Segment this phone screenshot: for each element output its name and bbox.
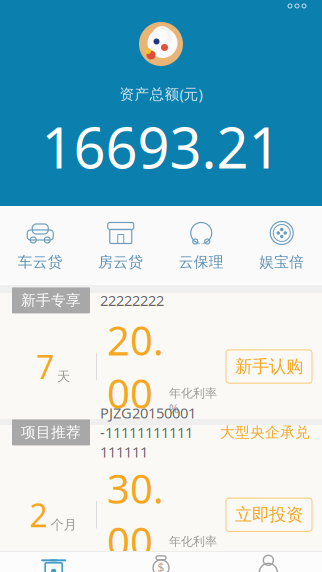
button[interactable]: 车云贷 — [0, 206, 80, 285]
button[interactable]: $ — [107, 550, 215, 572]
staticText: 大型央企承兑 — [220, 423, 310, 441]
staticText: 天 — [57, 368, 70, 385]
staticText: $ — [157, 560, 164, 572]
staticText: 年化利率 — [169, 534, 217, 549]
staticText: 新手专享 — [21, 291, 81, 309]
button[interactable]: 房云贷 — [80, 206, 161, 285]
staticText: % — [169, 401, 179, 417]
button[interactable]: 娱宝倍 — [241, 206, 322, 285]
staticText: 项目推荐 — [21, 423, 81, 441]
button[interactable]: More options — [278, 0, 316, 16]
staticText: 2 — [29, 493, 47, 536]
staticText: 房云贷 — [98, 253, 143, 271]
staticText: 22222222 — [100, 291, 164, 310]
button[interactable]: 云保理 — [161, 206, 241, 285]
staticText: 云保理 — [179, 253, 224, 271]
staticText: 个月 — [50, 517, 76, 533]
staticText: PJZG20150001-11111111111111111 — [100, 403, 196, 462]
button[interactable]: 我的 — [215, 550, 322, 572]
staticText: 16693.21 — [41, 109, 280, 184]
staticText: 年化利率 — [169, 386, 217, 401]
button[interactable]: 首页 — [0, 550, 107, 572]
staticText: 车云贷 — [18, 253, 63, 271]
button[interactable]: 新手专享 — [0, 293, 322, 419]
staticText: 娱宝倍 — [259, 253, 304, 271]
staticText: 30.00 — [107, 462, 164, 568]
staticText: 20.00 — [107, 313, 164, 420]
staticText: 立即投资 — [235, 504, 303, 525]
staticText: 7 — [36, 345, 54, 388]
staticText: % — [169, 549, 179, 565]
staticText: 资产总额(元) — [119, 84, 202, 103]
button[interactable]: 项目推荐 — [0, 425, 322, 551]
staticText: 新手认购 — [235, 356, 303, 377]
